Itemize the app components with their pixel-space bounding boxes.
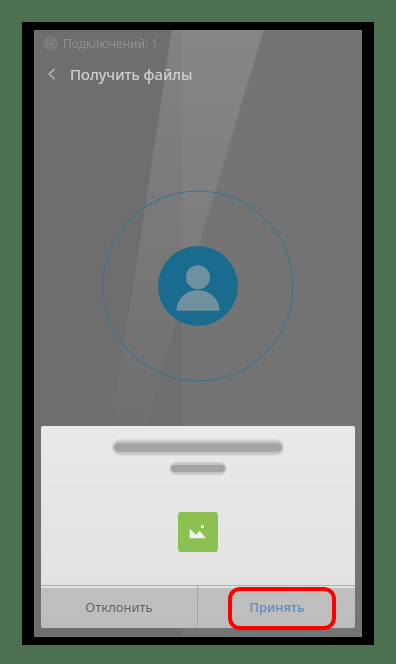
staticText: Подключений: 1 <box>63 35 159 51</box>
staticText: Отклонить <box>85 598 153 616</box>
button[interactable]: Назад <box>34 56 70 92</box>
button[interactable]: Отклонить <box>41 586 197 628</box>
button[interactable]: Принять <box>198 586 355 628</box>
staticText: Принять <box>249 598 305 616</box>
staticText: Получить файлы <box>70 64 193 84</box>
